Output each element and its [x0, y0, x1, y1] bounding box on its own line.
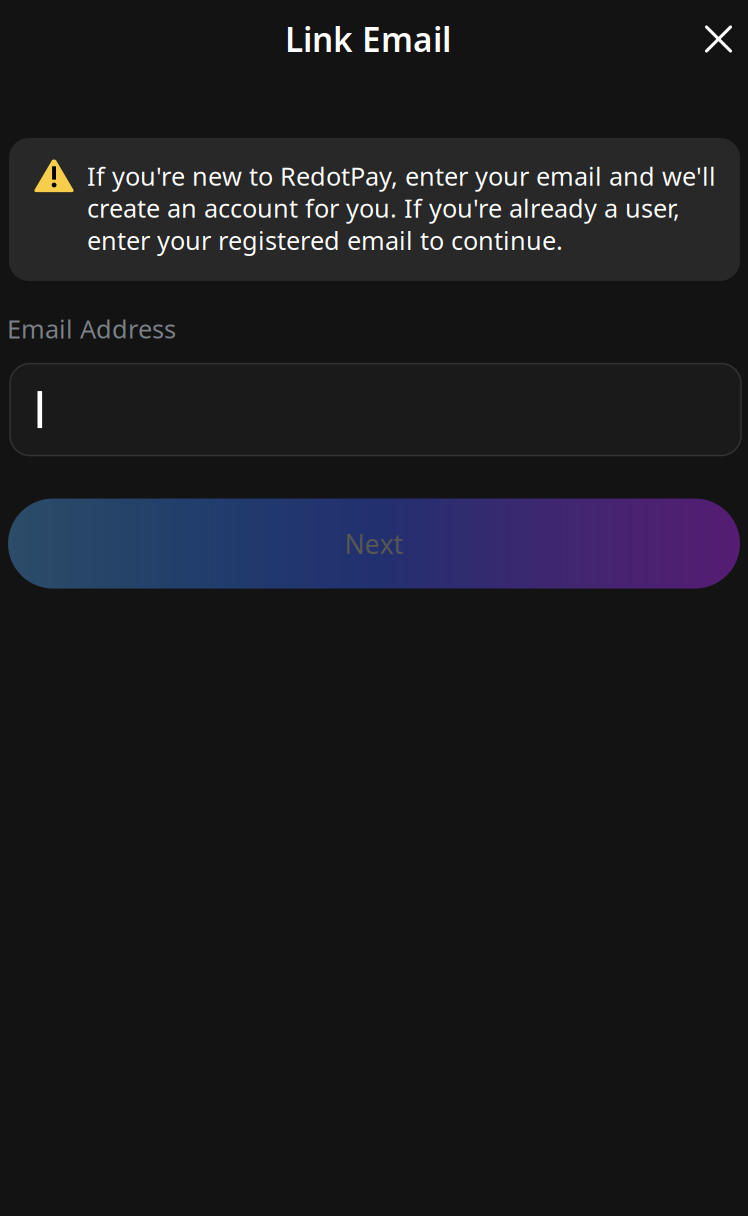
- staticText: If you're new to RedotPay, enter your em…: [87, 159, 716, 257]
- staticText: Email Address: [7, 312, 176, 345]
- button[interactable]: Next: [8, 499, 740, 589]
- staticText: Link Email: [285, 17, 451, 61]
- button[interactable]: Close: [688, 8, 748, 70]
- staticText: Next: [344, 526, 403, 561]
- button[interactable]: [10, 364, 741, 456]
